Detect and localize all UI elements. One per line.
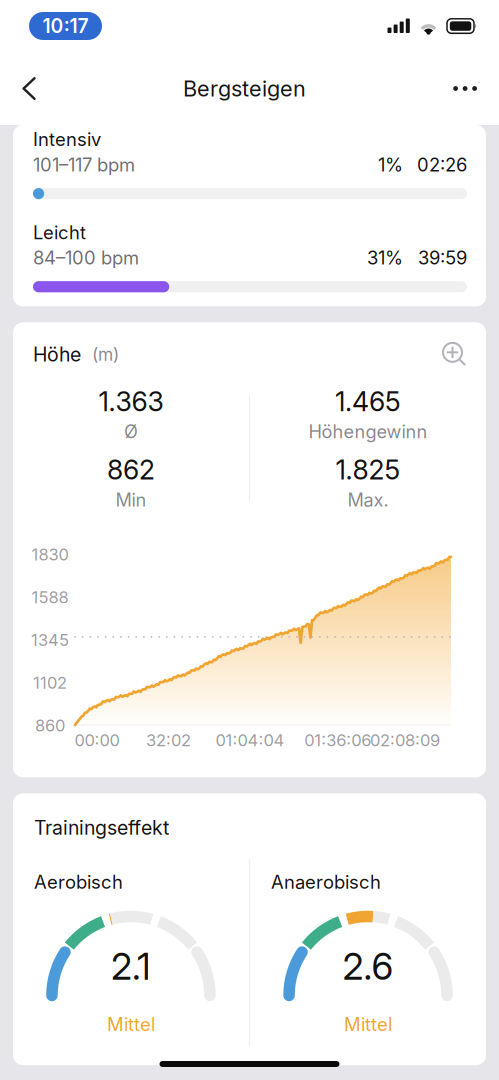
staticText: 860 — [35, 716, 65, 736]
staticText: 1102 — [33, 673, 67, 693]
staticText: Aerobisch — [34, 871, 123, 893]
staticText: 39:59 — [418, 247, 467, 269]
staticText: 862 — [107, 454, 155, 486]
staticText: Min — [115, 489, 146, 511]
staticText: 00:00 — [74, 730, 119, 750]
staticText: Max. — [348, 489, 389, 511]
staticText: (m) — [92, 344, 119, 365]
staticText: 1588 — [31, 587, 68, 607]
staticText: Leicht — [33, 221, 86, 244]
button[interactable]: Back — [0, 61, 54, 116]
staticText: 01:04:04 — [216, 730, 285, 750]
button[interactable]: More options — [435, 61, 499, 116]
staticText: 1830 — [31, 545, 68, 565]
staticText: 10:17 — [42, 14, 88, 38]
staticText: 1.825 — [336, 454, 401, 486]
staticText: Ø — [124, 421, 138, 442]
staticText: 02:26 — [417, 154, 467, 176]
staticText: 1.363 — [98, 385, 163, 418]
staticText: Höhengewinn — [309, 421, 428, 442]
staticText: 01:36:06 — [304, 730, 371, 750]
staticText: 1345 — [31, 630, 69, 650]
staticText: 1.465 — [335, 385, 401, 418]
staticText: 2.6 — [343, 944, 394, 989]
button[interactable]: Enlarge chart — [433, 341, 466, 368]
staticText: Bergsteigen — [183, 75, 306, 102]
staticText: 32:02 — [146, 730, 191, 750]
staticText: 1% — [378, 154, 403, 176]
staticText: Mittel — [107, 1013, 155, 1035]
staticText: 31% — [367, 247, 403, 269]
staticText: 101–117 bpm — [33, 154, 135, 176]
staticText: Anaerobisch — [271, 871, 381, 893]
staticText: Intensiv — [33, 128, 101, 151]
staticText: 2.1 — [111, 944, 151, 989]
staticText: Höhe — [33, 343, 81, 366]
staticText: 84–100 bpm — [33, 247, 139, 269]
staticText: Mittel — [344, 1013, 392, 1035]
staticText: 02:08:09 — [370, 730, 440, 750]
staticText: Trainingseffekt — [34, 816, 169, 840]
